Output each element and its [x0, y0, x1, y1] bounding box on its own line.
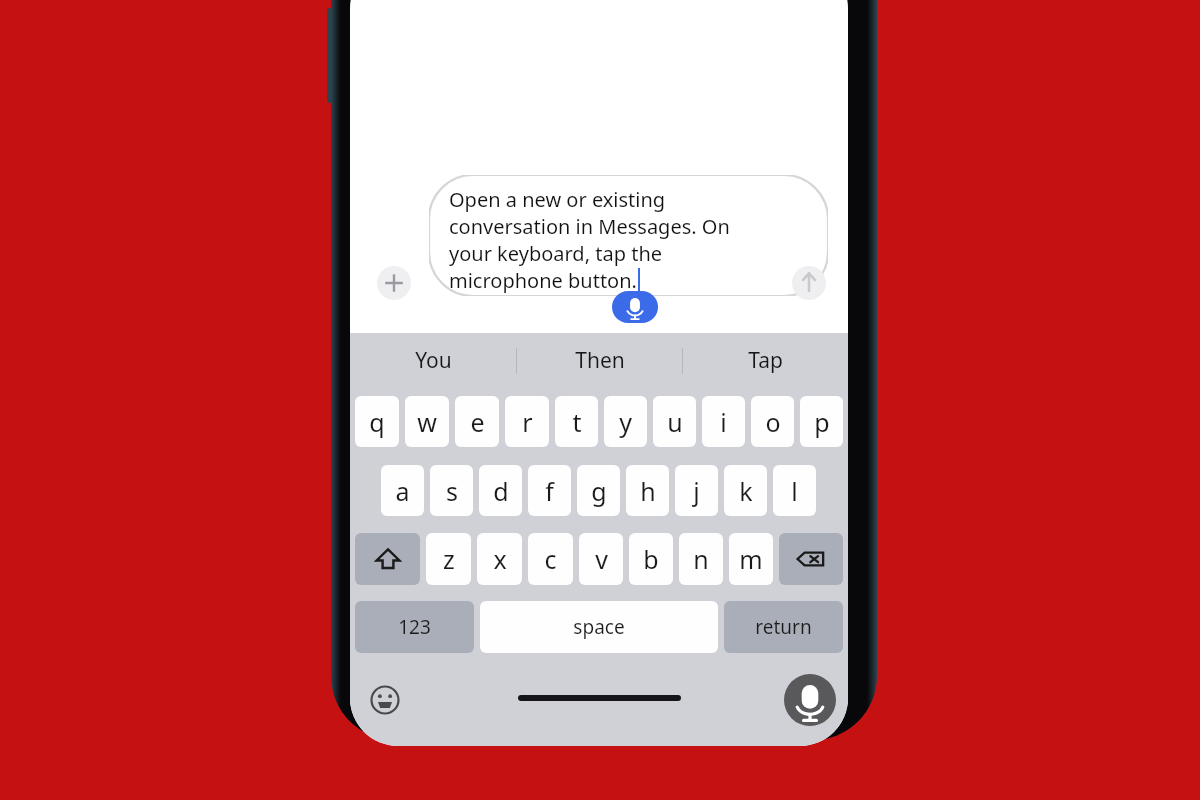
button[interactable]: h — [626, 465, 669, 516]
staticText: You — [415, 346, 452, 375]
staticText: e — [470, 405, 485, 439]
staticText: your keyboard, tap the — [449, 240, 663, 267]
button[interactable]: w — [405, 396, 449, 447]
button[interactable]: 123 — [355, 601, 474, 653]
staticText: h — [640, 474, 656, 508]
button[interactable]: Dictation — [784, 674, 836, 726]
staticText: b — [643, 542, 659, 576]
staticText: w — [417, 405, 437, 439]
staticText: 123 — [398, 614, 431, 640]
button[interactable]: r — [505, 396, 549, 447]
button[interactable]: x — [477, 533, 522, 585]
button[interactable]: y — [604, 396, 647, 447]
staticText: space — [573, 614, 625, 640]
staticText: f — [545, 474, 554, 508]
button[interactable]: Dictate — [612, 291, 658, 323]
staticText: conversation in Messages. On — [449, 213, 730, 240]
button[interactable]: Backspace — [779, 533, 843, 585]
staticText: y — [619, 405, 632, 439]
button[interactable]: Open a new or existing — [429, 175, 828, 296]
staticText: Then — [575, 346, 625, 375]
staticText: r — [522, 405, 533, 439]
staticText: v — [595, 542, 608, 576]
button[interactable]: m — [729, 533, 773, 585]
staticText: q — [369, 405, 385, 439]
staticText: o — [765, 405, 781, 439]
button[interactable]: Shift — [355, 533, 420, 585]
staticText: j — [693, 474, 700, 508]
staticText: a — [395, 474, 410, 508]
button[interactable]: l — [773, 465, 816, 516]
button[interactable]: space — [480, 601, 718, 653]
button[interactable]: t — [555, 396, 598, 447]
staticText: Tap — [748, 346, 783, 375]
button[interactable]: c — [528, 533, 573, 585]
staticText: d — [493, 474, 509, 508]
staticText: t — [572, 405, 582, 439]
staticText: return — [755, 614, 812, 640]
button[interactable]: g — [577, 465, 620, 516]
staticText: z — [443, 542, 455, 576]
staticText: i — [720, 405, 727, 439]
button[interactable]: Send — [792, 266, 826, 300]
staticText: microphone button. — [449, 267, 637, 294]
staticText: Open a new or existing — [449, 186, 666, 213]
staticText: k — [739, 474, 753, 508]
button[interactable]: d — [479, 465, 522, 516]
button[interactable]: q — [355, 396, 399, 447]
staticText: l — [791, 474, 798, 508]
button[interactable]: n — [679, 533, 723, 585]
staticText: x — [493, 542, 507, 576]
staticText: m — [739, 542, 763, 576]
button[interactable]: i — [702, 396, 745, 447]
button[interactable]: k — [724, 465, 767, 516]
button[interactable]: You — [350, 333, 516, 388]
button[interactable]: Emoji — [368, 683, 402, 717]
staticText: s — [446, 474, 458, 508]
staticText: p — [814, 405, 830, 439]
button[interactable]: f — [528, 465, 571, 516]
button[interactable]: o — [751, 396, 794, 447]
staticText: n — [693, 542, 709, 576]
button[interactable]: p — [800, 396, 843, 447]
staticText: c — [544, 542, 557, 576]
button[interactable]: Tap — [683, 333, 848, 388]
button[interactable]: j — [675, 465, 718, 516]
button[interactable]: e — [455, 396, 499, 447]
button[interactable]: Add attachment — [377, 266, 411, 300]
button[interactable]: s — [430, 465, 473, 516]
staticText: g — [591, 474, 607, 508]
staticText: u — [667, 405, 683, 439]
button[interactable]: return — [724, 601, 843, 653]
button[interactable]: Then — [517, 333, 682, 388]
button[interactable]: u — [653, 396, 696, 447]
button[interactable]: z — [426, 533, 471, 585]
button[interactable]: a — [381, 465, 424, 516]
button[interactable]: b — [629, 533, 673, 585]
button[interactable]: v — [579, 533, 623, 585]
